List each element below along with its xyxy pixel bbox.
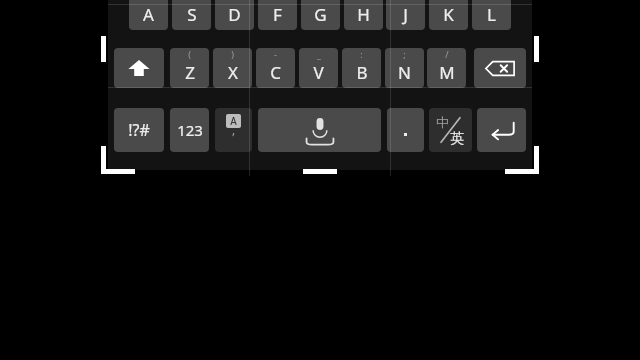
staticText: F — [273, 3, 282, 26]
staticText: ) — [231, 48, 234, 60]
staticText: J — [403, 3, 408, 26]
staticText: _ — [317, 48, 321, 60]
button[interactable]: - — [256, 48, 295, 88]
button[interactable]: Enter — [477, 108, 526, 152]
button[interactable]: ) — [213, 48, 252, 88]
staticText: V — [313, 61, 324, 84]
button[interactable]: S — [172, 0, 211, 30]
staticText: 中 — [436, 114, 449, 130]
button[interactable]: A — [129, 0, 168, 30]
button[interactable]: H — [344, 0, 383, 30]
staticText: K — [443, 3, 454, 26]
staticText: Z — [185, 61, 195, 84]
staticText: X — [228, 61, 238, 84]
button[interactable]: / — [427, 48, 466, 88]
staticText: G — [314, 3, 327, 26]
button[interactable]: : — [342, 48, 381, 88]
staticText: C — [270, 61, 281, 84]
button[interactable]: D — [215, 0, 254, 30]
staticText: / — [445, 48, 449, 60]
staticText: 英 — [450, 130, 464, 148]
button[interactable]: Switch language — [429, 108, 472, 152]
button[interactable]: ; — [385, 48, 424, 88]
button[interactable]: ( — [170, 48, 209, 88]
staticText: L — [487, 3, 496, 26]
staticText: H — [357, 3, 370, 26]
staticText: : — [360, 48, 363, 60]
button[interactable]: F — [258, 0, 297, 30]
staticText: N — [398, 61, 411, 84]
button[interactable]: G — [301, 0, 340, 30]
button[interactable]: Period — [387, 108, 424, 152]
button[interactable]: _ — [299, 48, 338, 88]
button[interactable]: L — [472, 0, 511, 30]
button[interactable]: Input options — [215, 108, 252, 152]
staticText: B — [356, 61, 368, 84]
staticText: !?# — [128, 119, 150, 141]
button[interactable]: Shift — [114, 48, 164, 88]
staticText: - — [274, 48, 277, 60]
staticText: M — [439, 61, 455, 84]
button[interactable]: J — [386, 0, 425, 30]
staticText: S — [187, 3, 197, 26]
button[interactable]: Space, voice input — [258, 108, 381, 152]
button[interactable]: K — [429, 0, 468, 30]
staticText: 123 — [177, 120, 203, 140]
button[interactable]: 123 — [170, 108, 209, 152]
staticText: A — [230, 114, 237, 128]
staticText: A — [143, 3, 154, 26]
staticText: ’ — [232, 128, 235, 146]
button[interactable]: Backspace — [474, 48, 526, 88]
staticText: ( — [188, 48, 191, 60]
button[interactable]: !?# — [114, 108, 164, 152]
staticText: ; — [403, 48, 406, 60]
staticText: D — [228, 3, 241, 26]
